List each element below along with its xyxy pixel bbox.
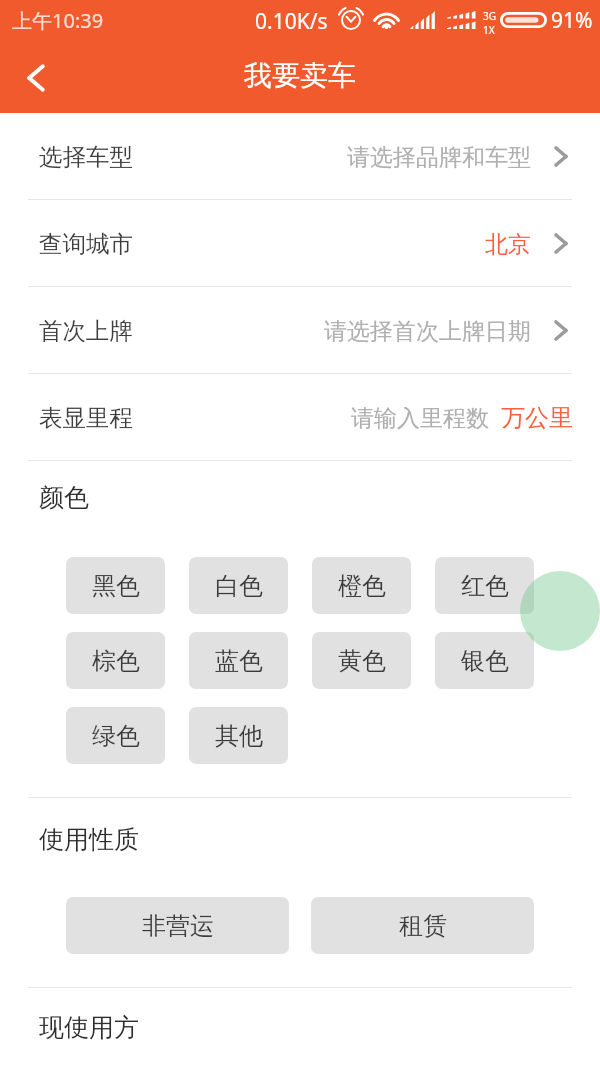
staticText: 请选择品牌和车型 bbox=[347, 143, 531, 172]
staticText: 绿色 bbox=[92, 721, 140, 751]
staticText: 银色 bbox=[461, 646, 509, 676]
button[interactable]: 选择车型 bbox=[0, 113, 600, 199]
staticText: 黄色 bbox=[338, 646, 386, 676]
staticText: 颜色 bbox=[39, 482, 89, 513]
staticText: 租赁 bbox=[399, 911, 447, 941]
staticText: 万公里 bbox=[501, 403, 573, 433]
button[interactable]: 白色 bbox=[189, 557, 288, 614]
button[interactable]: 查询城市 bbox=[0, 200, 600, 286]
staticText: 红色 bbox=[461, 571, 509, 601]
staticText: 橙色 bbox=[338, 571, 386, 601]
staticText: 选择车型 bbox=[39, 142, 133, 172]
staticText: 其他 bbox=[215, 721, 263, 751]
button[interactable]: 棕色 bbox=[66, 632, 165, 689]
staticText: 棕色 bbox=[92, 646, 140, 676]
staticText: 查询城市 bbox=[39, 229, 133, 259]
staticText: 3G bbox=[483, 9, 496, 23]
staticText: 白色 bbox=[215, 571, 263, 601]
button[interactable]: 红色 bbox=[435, 557, 534, 614]
staticText: 1X bbox=[483, 23, 495, 37]
staticText: 请输入里程数 bbox=[351, 404, 489, 433]
button[interactable]: 黑色 bbox=[66, 557, 165, 614]
staticText: 我要卖车 bbox=[244, 58, 356, 93]
button[interactable]: 黄色 bbox=[312, 632, 411, 689]
button[interactable]: 租赁 bbox=[311, 897, 534, 954]
button[interactable]: Assistive touch bbox=[520, 571, 600, 651]
button[interactable]: 银色 bbox=[435, 632, 534, 689]
staticText: 上午10:39 bbox=[12, 7, 104, 34]
staticText: 首次上牌 bbox=[39, 316, 133, 346]
staticText: 蓝色 bbox=[215, 646, 263, 676]
button[interactable]: 蓝色 bbox=[189, 632, 288, 689]
button[interactable]: 其他 bbox=[189, 707, 288, 764]
staticText: 91% bbox=[551, 6, 593, 35]
button[interactable]: 非营运 bbox=[66, 897, 289, 954]
staticText: 表显里程 bbox=[39, 403, 133, 433]
staticText: 请选择首次上牌日期 bbox=[324, 317, 531, 346]
staticText: 黑色 bbox=[92, 571, 140, 601]
staticText: 0.10K/s bbox=[255, 7, 328, 36]
button[interactable]: 首次上牌 bbox=[0, 287, 600, 373]
staticText: 非营运 bbox=[142, 911, 214, 941]
button[interactable]: 橙色 bbox=[312, 557, 411, 614]
staticText: 北京 bbox=[485, 230, 531, 259]
button[interactable]: 表显里程 bbox=[0, 374, 600, 460]
button[interactable]: 绿色 bbox=[66, 707, 165, 764]
button[interactable]: Back bbox=[0, 47, 66, 113]
staticText: 现使用方 bbox=[39, 1012, 139, 1043]
staticText: 使用性质 bbox=[39, 824, 139, 855]
